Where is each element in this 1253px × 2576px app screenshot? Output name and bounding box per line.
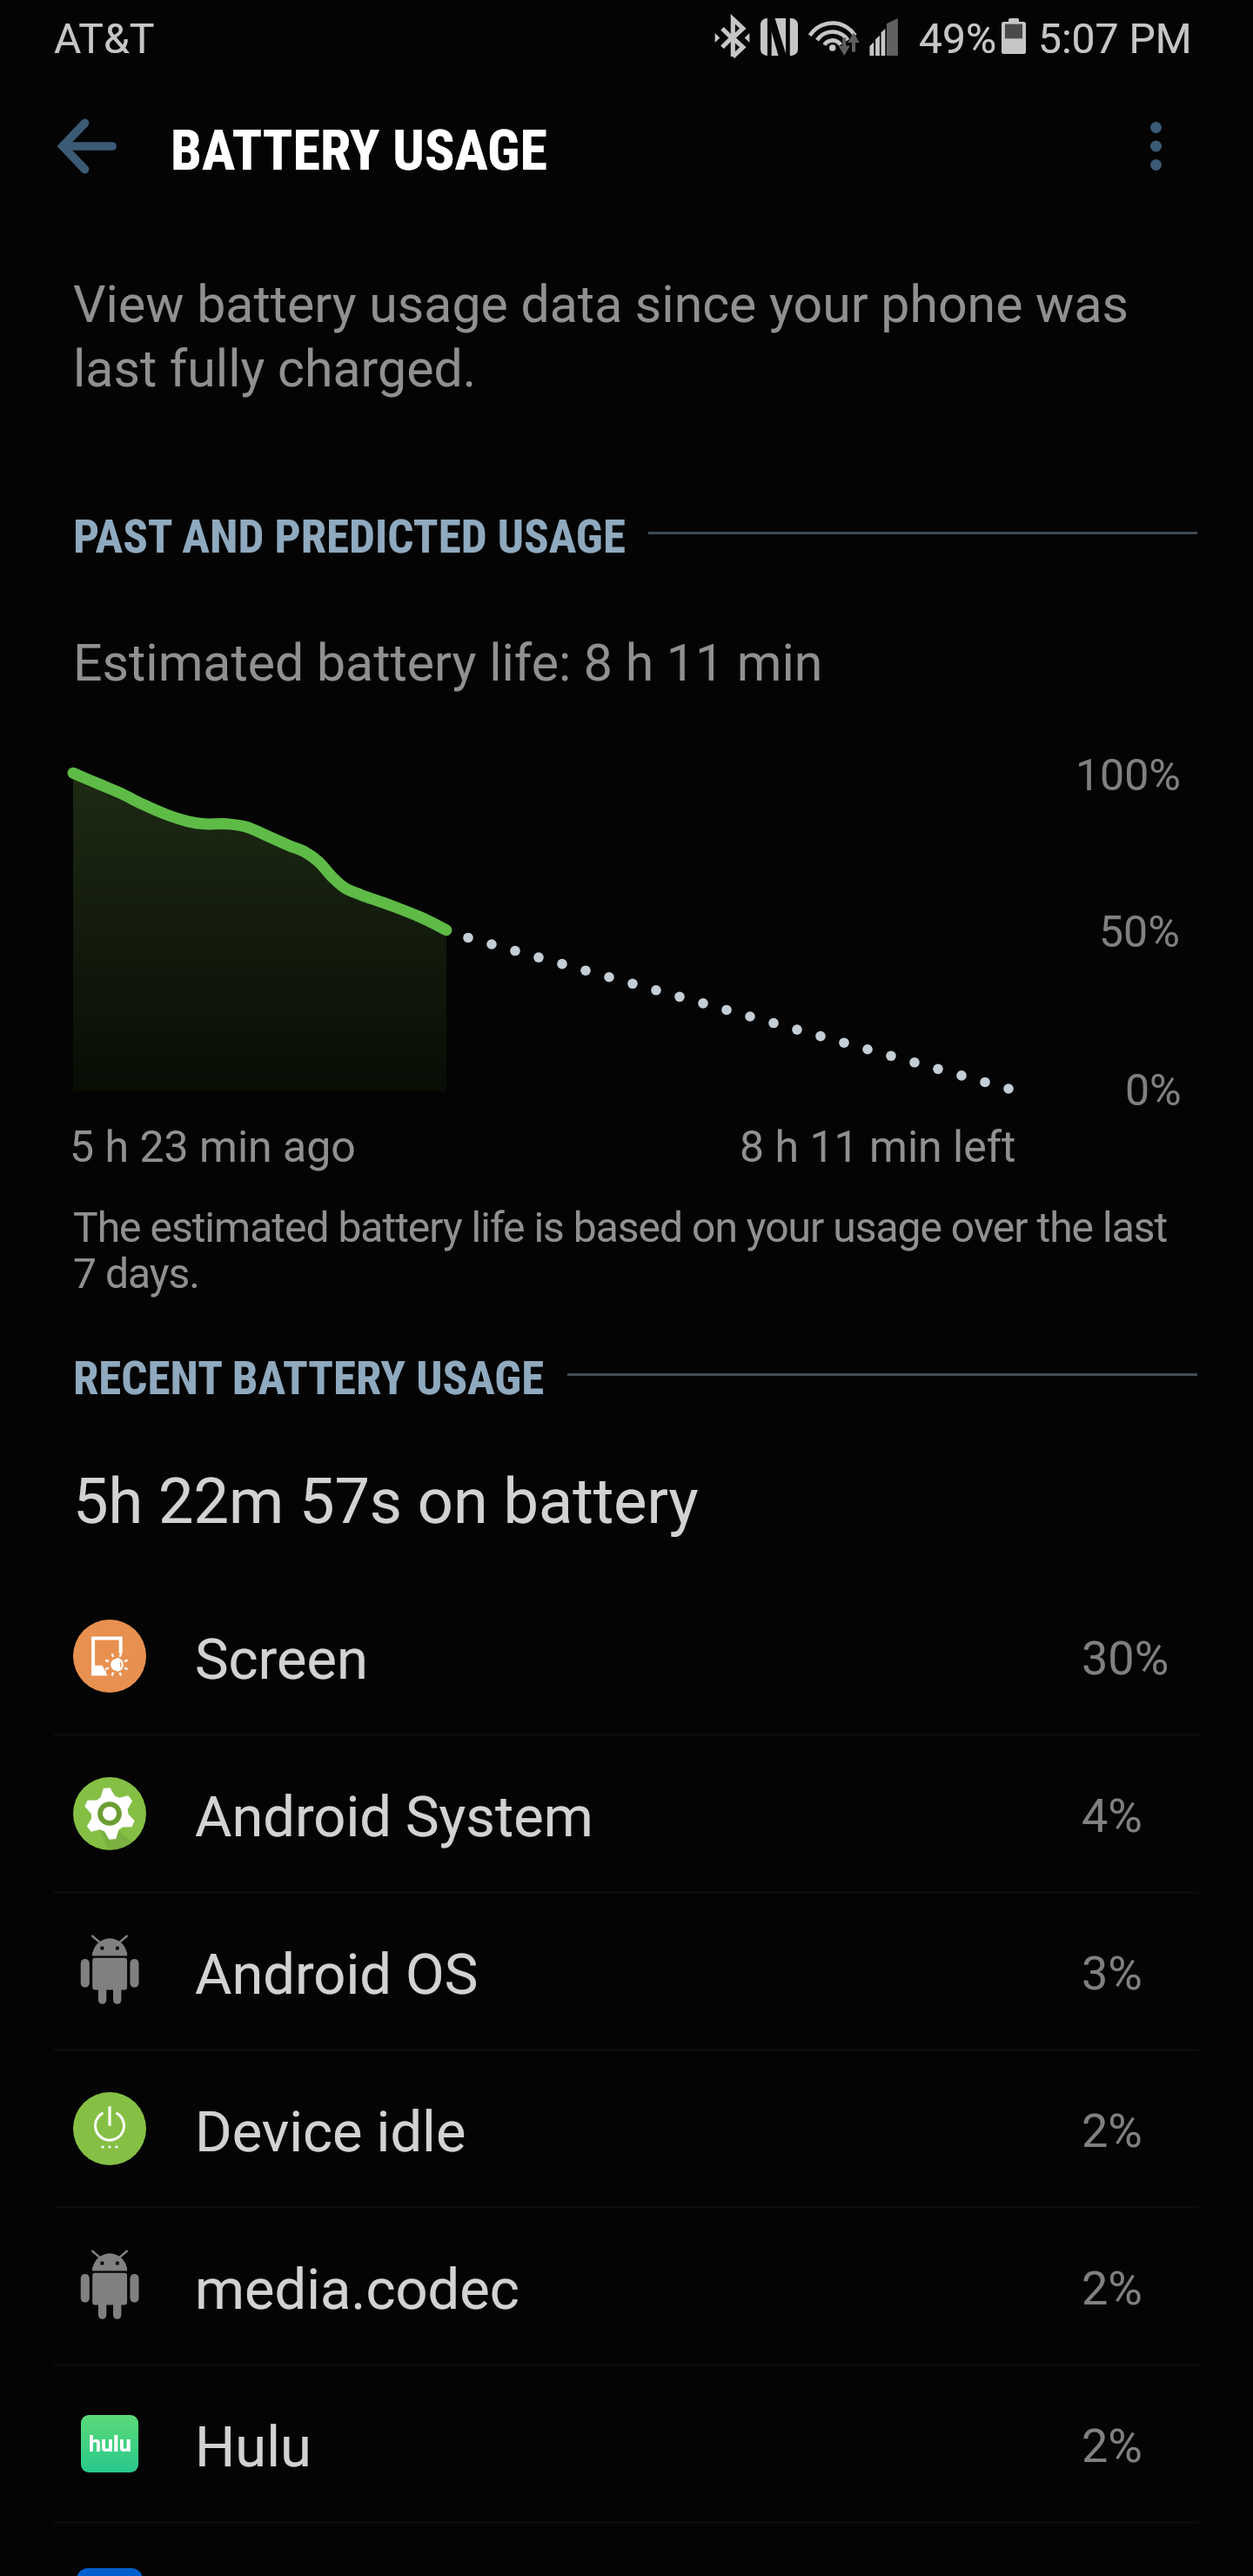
staticText: Screen — [195, 1627, 368, 1693]
button[interactable]: Android System — [0, 1736, 1253, 1891]
staticText: 5h 22m 57s on battery — [73, 1465, 699, 1538]
staticText: hulu — [89, 2432, 131, 2457]
staticText: BATTERY USAGE — [171, 118, 547, 184]
staticText: 100% — [1075, 750, 1181, 802]
staticText: 8 h 11 min left — [740, 1122, 1016, 1173]
staticText: Estimated battery life: 8 h 11 min — [73, 633, 823, 693]
staticText: View battery usage data since your phone… — [73, 274, 1129, 399]
staticText: 5:07 PM — [1038, 14, 1192, 63]
button[interactable]: More options — [1103, 94, 1208, 198]
button[interactable]: Screen — [0, 1579, 1253, 1734]
staticText: 2% — [1082, 2103, 1142, 2158]
button[interactable]: Device idle — [0, 2051, 1253, 2206]
staticText: Hulu — [195, 2414, 312, 2480]
staticText: PAST AND PREDICTED USAGE — [73, 510, 626, 564]
staticText: Device idle — [195, 2099, 466, 2165]
staticText: 5 h 23 min ago — [70, 1122, 356, 1173]
button[interactable] — [0, 2524, 1253, 2576]
staticText: AT&T — [54, 14, 155, 63]
staticText: 4% — [1082, 1788, 1142, 1843]
button[interactable]: Back — [35, 94, 139, 198]
staticText: 50% — [1099, 907, 1180, 958]
staticText: media.codec — [195, 2257, 519, 2323]
staticText: 0% — [1125, 1065, 1182, 1117]
staticText: Android System — [195, 1784, 593, 1850]
staticText: The estimated battery life is based on y… — [73, 1203, 1168, 1298]
staticText: 3% — [1082, 1946, 1142, 2001]
staticText: Android OS — [195, 1942, 479, 2008]
staticText: 2% — [1082, 2418, 1142, 2473]
button[interactable]: Android OS — [0, 1894, 1253, 2049]
staticText: 49% — [919, 14, 997, 63]
staticText: RECENT BATTERY USAGE — [73, 1352, 545, 1405]
button[interactable]: hulu — [0, 2366, 1253, 2521]
staticText: 30% — [1082, 1631, 1169, 1686]
staticText: 2% — [1082, 2261, 1142, 2316]
button[interactable]: media.codec — [0, 2209, 1253, 2364]
